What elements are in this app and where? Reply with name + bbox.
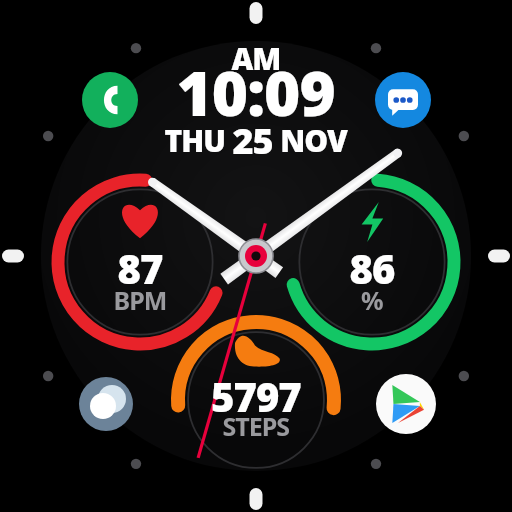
button[interactable]: Watch face <box>0 0 512 512</box>
